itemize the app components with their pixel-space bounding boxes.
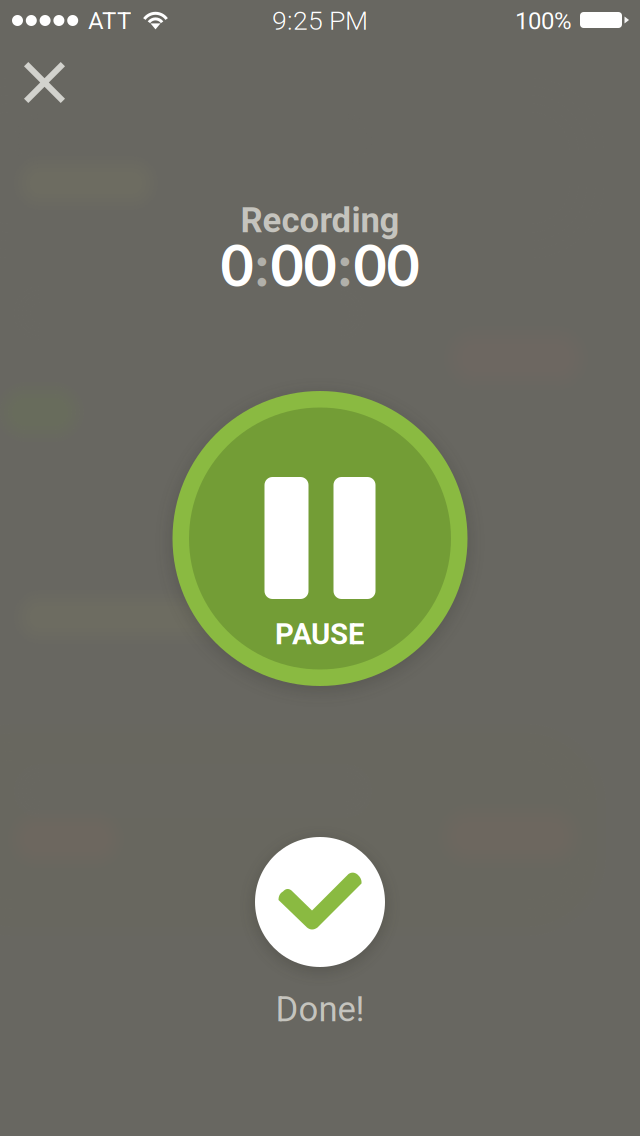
button[interactable]: Close (8, 46, 81, 119)
staticText: : (254, 230, 269, 299)
staticText: 100% (515, 7, 572, 35)
staticText: 9:25 PM (272, 5, 368, 36)
staticText: PAUSE (275, 617, 365, 651)
staticText: Done! (275, 989, 364, 1030)
button[interactable]: PAUSE (172, 391, 467, 686)
staticText: : (337, 230, 352, 299)
staticText: ATT (88, 7, 131, 35)
staticText: Recording (240, 200, 399, 241)
staticText: 0 (220, 230, 253, 299)
staticText: 00 (270, 230, 336, 299)
button[interactable]: Done! (255, 837, 385, 1030)
staticText: 00 (353, 230, 419, 299)
